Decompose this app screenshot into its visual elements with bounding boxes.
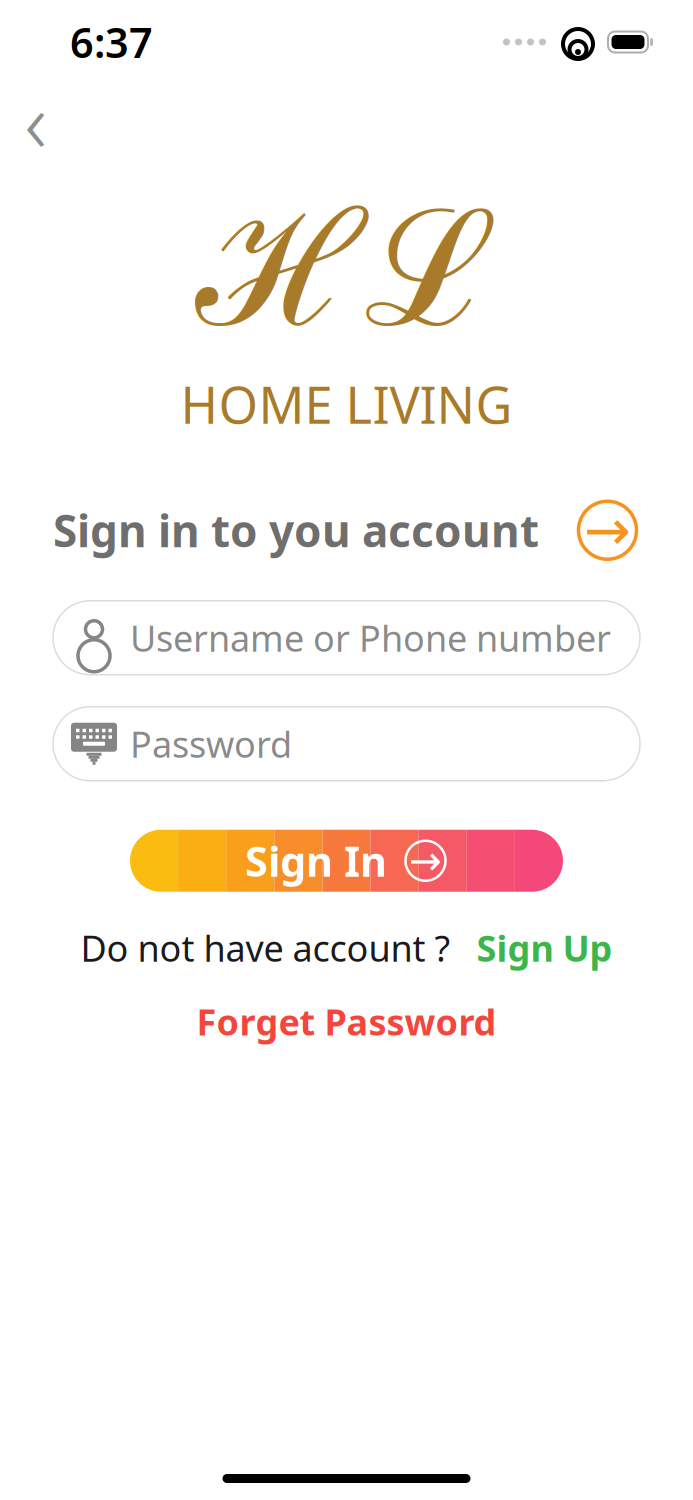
- staticText: HOME LIVING: [180, 370, 512, 438]
- staticText: Sign In: [245, 833, 387, 888]
- staticText: 6:37: [70, 15, 153, 69]
- button[interactable]: Sign Up: [450, 918, 612, 978]
- staticText: Forget Password: [196, 998, 496, 1045]
- button[interactable]: Continue: [575, 498, 640, 563]
- staticText: →: [584, 498, 631, 562]
- staticText: Do not have account ?: [80, 924, 450, 972]
- staticText: Password: [130, 720, 292, 768]
- staticText: ℋℒ: [195, 156, 497, 368]
- button[interactable]: Forget Password: [182, 990, 510, 1053]
- button[interactable]: Back: [6, 90, 66, 150]
- staticText: Sign in to you account: [53, 501, 539, 559]
- button[interactable]: Sign In: [130, 830, 563, 892]
- button[interactable]: Password: [53, 707, 640, 781]
- staticText: ‹: [24, 63, 47, 177]
- staticText: →: [408, 838, 442, 883]
- staticText: Username or Phone number: [130, 614, 611, 662]
- button[interactable]: Username or Phone number: [53, 601, 640, 675]
- staticText: Sign Up: [476, 924, 612, 972]
